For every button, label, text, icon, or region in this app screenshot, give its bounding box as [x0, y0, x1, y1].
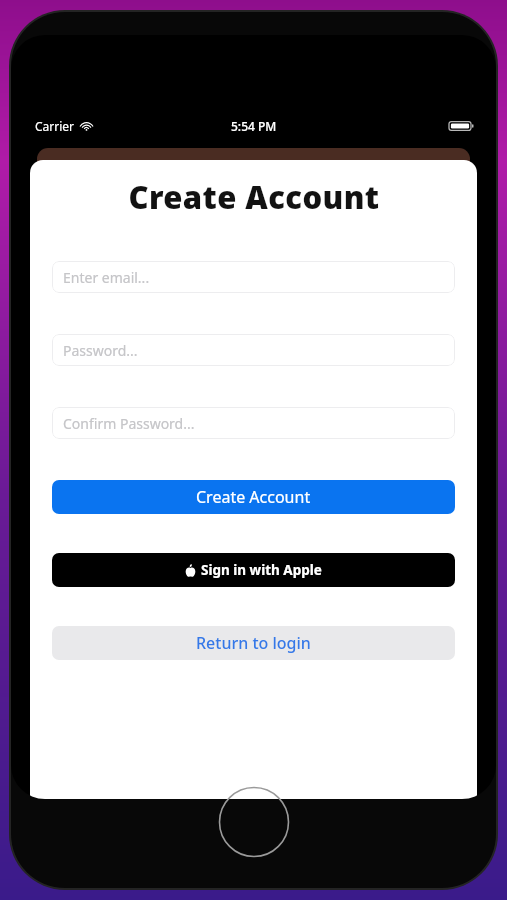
button[interactable]: Sign in with Apple — [52, 553, 455, 587]
staticText: Enter email... — [63, 268, 150, 287]
button[interactable]: Enter email... — [52, 261, 455, 293]
staticText: Return to login — [196, 632, 311, 654]
staticText: Sign in with Apple — [201, 561, 322, 579]
button[interactable]: Create Account — [52, 480, 455, 514]
staticText: 5:54 PM — [231, 118, 277, 134]
button[interactable]: Return to login — [52, 626, 455, 660]
button[interactable]: Confirm Password... — [52, 407, 455, 439]
button[interactable]: Password... — [52, 334, 455, 366]
staticText: Create Account — [128, 176, 380, 218]
staticText: Password... — [63, 341, 138, 360]
staticText: Create Account — [196, 486, 311, 508]
staticText: Confirm Password... — [63, 414, 195, 433]
staticText: Carrier — [35, 118, 75, 134]
button[interactable]: Home — [218, 786, 290, 858]
